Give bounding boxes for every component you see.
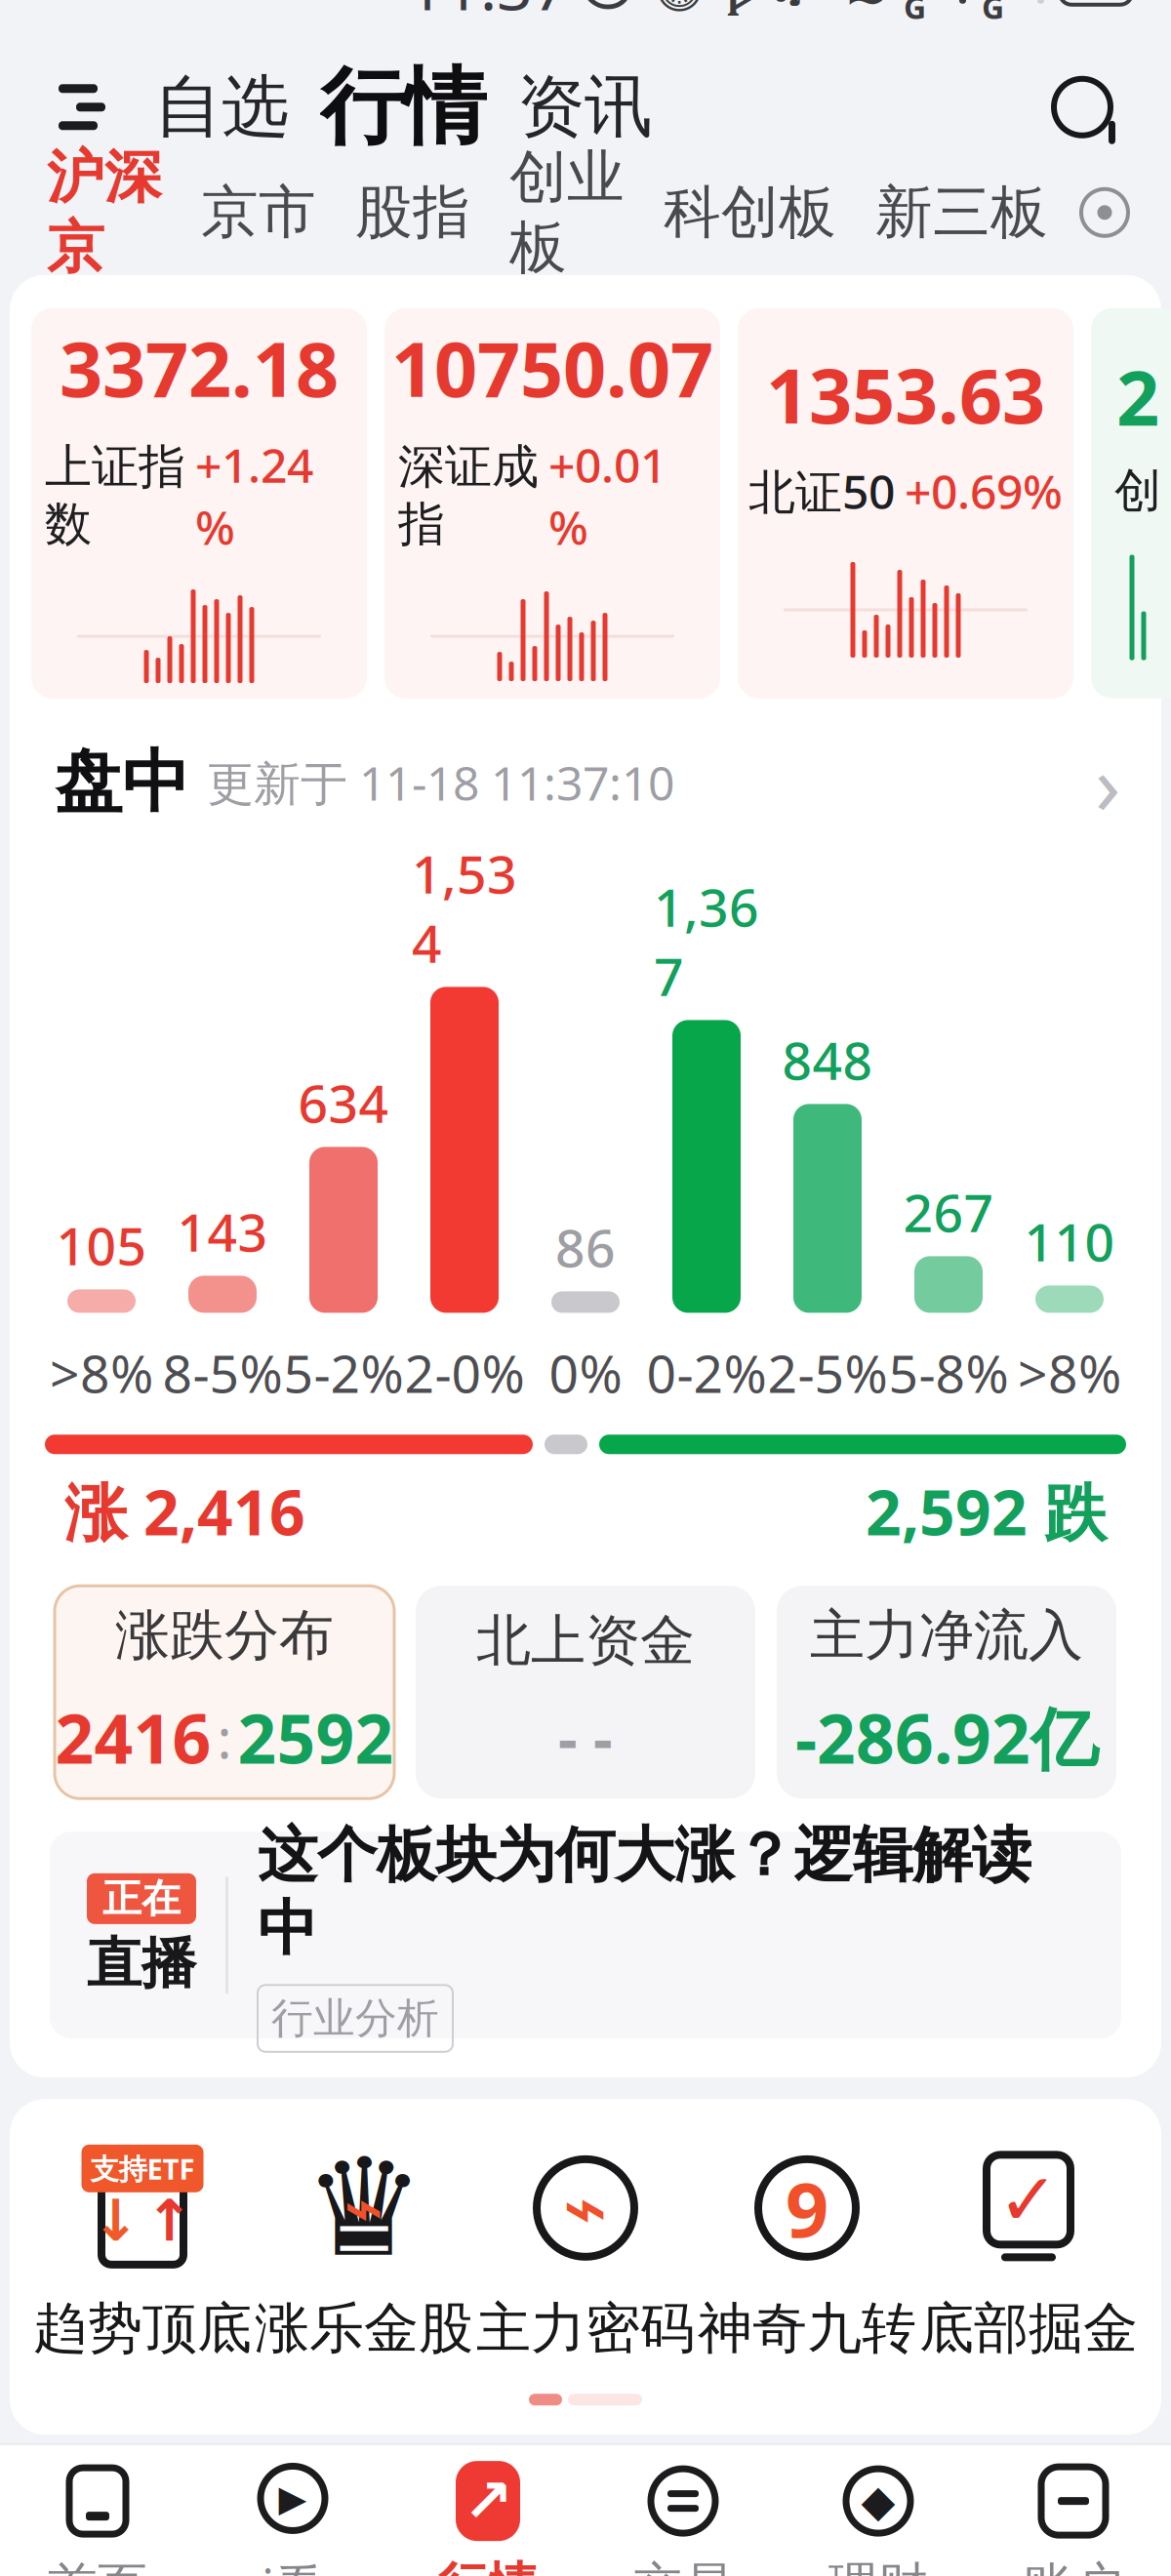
staticText: 新三板 — [875, 177, 1048, 248]
staticText: 直播 — [87, 1930, 196, 1997]
staticText: +0.01% — [548, 433, 666, 558]
staticText: 5-8% — [888, 1338, 1009, 1407]
button[interactable]: 搜索 — [1038, 63, 1126, 151]
staticText: 3372.18 — [60, 318, 339, 418]
staticText: 10750.07 — [391, 318, 713, 418]
button[interactable]: ↗ — [390, 2445, 585, 2576]
staticText: 8-5% — [162, 1338, 283, 1407]
button[interactable]: ♛ — [253, 2146, 475, 2361]
staticText: 底部掘金 — [919, 2295, 1138, 2362]
staticText: 沪深京 — [47, 142, 162, 283]
staticText: 1,534 — [412, 839, 517, 977]
button[interactable]: 新三板 — [875, 177, 1048, 248]
staticText: 理财 — [828, 2556, 928, 2576]
button[interactable]: 京市 — [201, 177, 316, 248]
button[interactable]: ⌁ — [475, 2146, 696, 2361]
staticText: 4G — [982, 0, 1004, 28]
staticText: Ⓝ — [581, 0, 632, 18]
staticText: 盘中 — [55, 741, 189, 824]
staticText: ⌁ — [343, 2170, 384, 2246]
staticText: 自选 — [154, 66, 289, 149]
staticText: ⏱ — [648, 0, 710, 14]
button[interactable]: 行情 — [316, 48, 490, 166]
staticText: 848 — [782, 1025, 873, 1094]
button[interactable]: 自选 — [146, 52, 297, 162]
staticText: >8% — [50, 1338, 153, 1407]
staticText: 行业分析 — [271, 1993, 439, 2044]
staticText: 涨乐金股 — [255, 2295, 473, 2362]
button[interactable]: 涨跌分布 — [55, 1586, 394, 1799]
button[interactable]: 账户 — [976, 2445, 1171, 2576]
staticText: 1,367 — [654, 872, 759, 1010]
button[interactable]: ↓ — [32, 2146, 253, 2361]
staticText: 2-0% — [404, 1338, 525, 1407]
button[interactable]: ◆ — [781, 2445, 976, 2576]
staticText: : — [217, 1701, 232, 1774]
staticText: 143 — [177, 1197, 268, 1266]
button[interactable]: 股指 — [355, 177, 470, 248]
staticText: 11:37 — [408, 0, 569, 28]
staticText: 2,592 跌 — [866, 1470, 1107, 1553]
button[interactable]: 沪深京 — [47, 142, 162, 283]
staticText: 深证成指 — [398, 438, 539, 553]
button[interactable]: 北上资金 — [416, 1586, 755, 1799]
staticText: ↓ — [92, 2188, 140, 2253]
staticText: ↗ — [463, 2467, 513, 2535]
staticText: 2416 — [55, 1693, 211, 1782]
staticText: 京市 — [201, 177, 316, 248]
button[interactable]: 1353.63 — [738, 308, 1073, 698]
button[interactable]: 主力净流入 — [777, 1586, 1116, 1799]
staticText: 首页 — [48, 2556, 147, 2576]
staticText: ⌁ — [563, 2165, 608, 2251]
staticText: 5-2% — [283, 1338, 404, 1407]
button[interactable]: 资讯 — [509, 52, 660, 162]
button[interactable]: 10750.07 — [384, 308, 720, 698]
staticText: 支持ETF — [90, 2149, 195, 2187]
staticText: 创 — [1114, 462, 1161, 520]
button[interactable]: 科创板 — [664, 177, 836, 248]
staticText: ♛ — [303, 2131, 424, 2285]
button[interactable]: 3372.18 — [31, 308, 367, 698]
staticText: -286.92亿 — [795, 1693, 1098, 1782]
staticText: 北证50 — [748, 460, 895, 522]
staticText: 634 — [298, 1068, 389, 1137]
staticText: 上证指数 — [45, 438, 185, 553]
staticText: 神奇九转 — [698, 2295, 916, 2362]
staticText: 0% — [549, 1338, 622, 1407]
button[interactable]: 菜单 — [41, 64, 123, 150]
button[interactable]: 盘中 — [10, 737, 1161, 827]
button[interactable]: 9 — [696, 2146, 918, 2361]
staticText: 2592 — [238, 1693, 394, 1782]
staticText: ♫ — [768, 0, 808, 11]
staticText: 0-2% — [646, 1338, 767, 1407]
button[interactable]: 板块设置 — [1070, 177, 1140, 248]
staticText: 这个板块为何大涨？逻辑解读中 — [258, 1819, 1031, 1966]
staticText: 资讯 — [517, 66, 652, 149]
button[interactable]: 创业板指 — [1091, 308, 1171, 698]
button[interactable]: ✓ — [918, 2146, 1139, 2361]
staticText: 更新于 11-18 11:37:10 — [207, 751, 674, 813]
staticText: 5G — [904, 0, 926, 28]
staticText: ↑ — [145, 2188, 193, 2253]
button[interactable]: ▶ — [195, 2445, 390, 2576]
staticText: 主力净流入 — [810, 1602, 1083, 1669]
staticText: 科创板 — [664, 177, 836, 248]
button[interactable]: 交易 — [585, 2445, 781, 2576]
staticText: >8% — [1018, 1338, 1121, 1407]
staticText: 267 — [903, 1177, 994, 1246]
staticText: +1.24% — [195, 433, 313, 558]
staticText: 主力密码 — [476, 2295, 695, 2362]
staticText: 2-5% — [767, 1338, 888, 1407]
button[interactable]: 正在 — [50, 1832, 1121, 2039]
staticText: 正在 — [102, 1875, 181, 1923]
staticText: ▶ — [279, 2478, 307, 2519]
staticText: +0.69% — [905, 460, 1063, 522]
staticText: 9 — [786, 2158, 828, 2258]
staticText: 行情 — [438, 2556, 538, 2576]
button[interactable]: 首页 — [0, 2445, 195, 2576]
staticText: 账户 — [1024, 2556, 1123, 2576]
button[interactable]: 创业板 — [509, 142, 625, 283]
staticText: - - — [558, 1698, 613, 1777]
staticText: 105 — [56, 1211, 147, 1280]
